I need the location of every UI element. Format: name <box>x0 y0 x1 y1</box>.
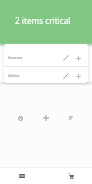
button[interactable]: Menu <box>12 167 32 184</box>
button[interactable]: Edit list <box>57 50 71 64</box>
button[interactable]: Add item <box>71 68 85 82</box>
staticText: Groceries <box>8 56 23 60</box>
button[interactable]: Shopping cart <box>61 167 81 184</box>
button[interactable]: Edit list <box>57 68 71 82</box>
button[interactable]: Add list <box>36 108 56 128</box>
staticText: Utilities <box>8 74 20 78</box>
button[interactable]: Add item <box>71 50 85 64</box>
button[interactable]: History <box>10 108 30 128</box>
button[interactable]: Groceries <box>4 44 88 66</box>
staticText: 2 items critical <box>15 15 71 26</box>
button[interactable]: Utilities <box>4 67 88 83</box>
button[interactable]: Sort <box>61 108 81 128</box>
